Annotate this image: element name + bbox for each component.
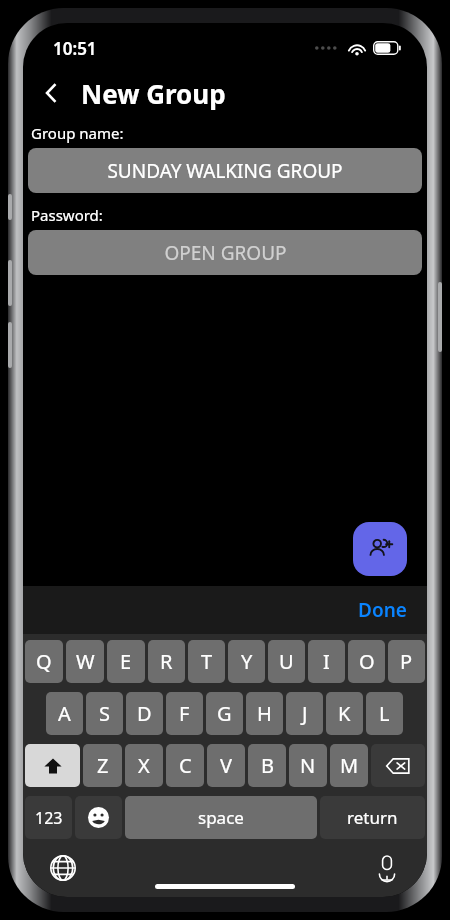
button[interactable]: D (126, 692, 163, 735)
button[interactable]: M (330, 744, 368, 787)
button[interactable]: O (348, 640, 385, 683)
button[interactable]: A (46, 692, 83, 735)
staticText: Y (241, 648, 253, 675)
button[interactable]: F (166, 692, 203, 735)
staticText: H (257, 700, 272, 727)
button[interactable]: OPEN GROUP (28, 230, 422, 275)
button[interactable]: N (289, 744, 327, 787)
staticText: 10:51 (53, 37, 97, 60)
button[interactable]: L (366, 692, 403, 735)
button[interactable]: C (166, 744, 204, 787)
button[interactable]: B (248, 744, 286, 787)
staticText: Done (358, 597, 407, 623)
staticText: O (359, 648, 375, 675)
button[interactable]: SUNDAY WALKING GROUP (28, 148, 422, 193)
staticText: J (302, 700, 308, 727)
button[interactable]: U (268, 640, 305, 683)
button[interactable]: Change keyboard language (43, 848, 83, 888)
staticText: W (76, 648, 95, 675)
button[interactable]: Add group members (353, 522, 407, 576)
staticText: L (379, 700, 390, 727)
staticText: M (340, 752, 359, 779)
staticText: P (400, 648, 413, 675)
staticText: Q (36, 648, 52, 675)
staticText: space (198, 806, 244, 829)
button[interactable]: Backspace (371, 744, 425, 787)
staticText: R (160, 648, 173, 675)
staticText: OPEN GROUP (164, 240, 287, 266)
button[interactable]: Y (228, 640, 265, 683)
button[interactable]: Shift (25, 744, 80, 787)
staticText: I (323, 648, 330, 675)
staticText: D (137, 700, 152, 727)
button[interactable]: S (86, 692, 123, 735)
staticText: T (201, 648, 213, 675)
staticText: X (138, 752, 150, 779)
button[interactable]: Q (25, 640, 63, 683)
button[interactable]: P (388, 640, 425, 683)
staticText: return (347, 806, 398, 829)
staticText: N (300, 752, 316, 779)
button[interactable]: R (148, 640, 185, 683)
button[interactable]: K (326, 692, 363, 735)
button[interactable]: V (207, 744, 245, 787)
staticText: New Group (81, 76, 226, 111)
button[interactable]: Done (358, 597, 407, 623)
staticText: G (217, 700, 232, 727)
button[interactable]: J (286, 692, 323, 735)
staticText: A (58, 700, 71, 727)
button[interactable]: T (188, 640, 225, 683)
button[interactable]: Voice input (367, 848, 407, 888)
staticText: E (120, 648, 132, 675)
staticText: F (179, 700, 190, 727)
staticText: SUNDAY WALKING GROUP (107, 158, 343, 184)
staticText: Password: (31, 205, 103, 225)
button[interactable]: 123 (25, 796, 72, 839)
button[interactable]: G (206, 692, 243, 735)
staticText: B (261, 752, 274, 779)
staticText: C (179, 752, 192, 779)
staticText: Group name: (31, 123, 124, 143)
button[interactable]: Emoji (75, 796, 122, 839)
staticText: U (279, 648, 294, 675)
button[interactable]: Back (29, 71, 73, 115)
staticText: S (99, 700, 110, 727)
staticText: Z (97, 752, 109, 779)
staticText: 123 (35, 807, 63, 829)
staticText: K (338, 700, 351, 727)
button[interactable]: H (246, 692, 283, 735)
button[interactable]: space (125, 796, 317, 839)
button[interactable]: X (125, 744, 163, 787)
button[interactable]: E (107, 640, 145, 683)
staticText: V (220, 752, 232, 779)
button[interactable]: Z (83, 744, 122, 787)
button[interactable]: I (308, 640, 345, 683)
button[interactable]: return (320, 796, 425, 839)
button[interactable]: W (66, 640, 104, 683)
